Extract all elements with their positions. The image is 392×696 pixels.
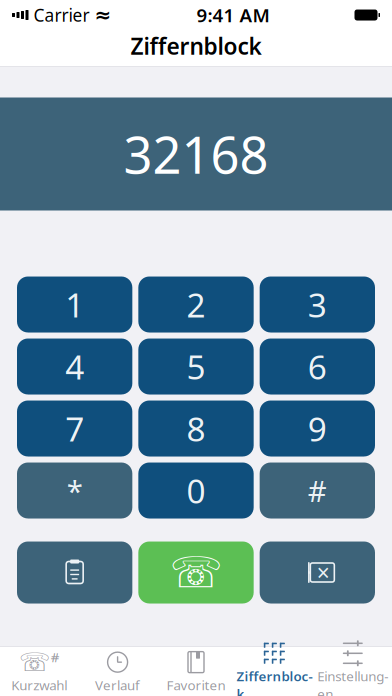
staticText: * [67,471,83,510]
staticText: 4 [65,344,84,389]
button[interactable]: 0 [138,462,254,518]
button[interactable]: 9 [260,400,375,456]
staticText: 7 [65,406,84,451]
staticText: Verlauf [95,676,140,694]
button[interactable]: 8 [138,400,254,456]
staticText: Kurzwahl [11,676,67,694]
staticText: 2 [186,282,205,327]
staticText: 0 [186,468,205,513]
staticText: Ziffernblock [130,31,261,61]
button[interactable]: 1 [17,276,132,332]
staticText: Carrier [33,3,89,26]
button[interactable]: 3 [260,276,375,332]
button[interactable]: 2 [138,276,254,332]
button[interactable]: Löschen [260,541,375,603]
staticText: 6 [308,344,327,389]
staticText: 8 [186,406,205,451]
button[interactable]: * [17,462,132,518]
button[interactable]: ☏ [0,645,78,696]
staticText: Ziffernblock [236,667,312,696]
button[interactable]: Einstellungen [314,636,392,696]
button[interactable]: Verlauf [78,645,157,696]
staticText: ☏ [19,648,51,677]
staticText: 5 [186,344,205,389]
button[interactable]: Einfügen [17,541,132,603]
button[interactable]: 7 [17,400,132,456]
staticText: # [308,471,327,510]
staticText: ≈ [94,4,111,26]
staticText: 3 [308,282,327,327]
button[interactable]: # [260,462,375,518]
staticText: Favoriten [166,676,225,694]
button[interactable]: Ziffernblock [235,636,314,696]
staticText: × [317,557,330,587]
button[interactable]: Anrufen [138,541,254,603]
staticText: # [51,648,60,666]
staticText: ☏ [169,548,222,597]
staticText: 9 [308,406,327,451]
staticText: Einstellungen [317,667,388,696]
staticText: 9:41 AM [196,3,269,27]
button[interactable]: 5 [138,338,254,394]
button[interactable]: 6 [260,338,375,394]
button[interactable]: Favoriten [157,645,235,696]
staticText: 1 [65,282,84,327]
staticText: 32168 [123,120,268,188]
button[interactable]: 4 [17,338,132,394]
